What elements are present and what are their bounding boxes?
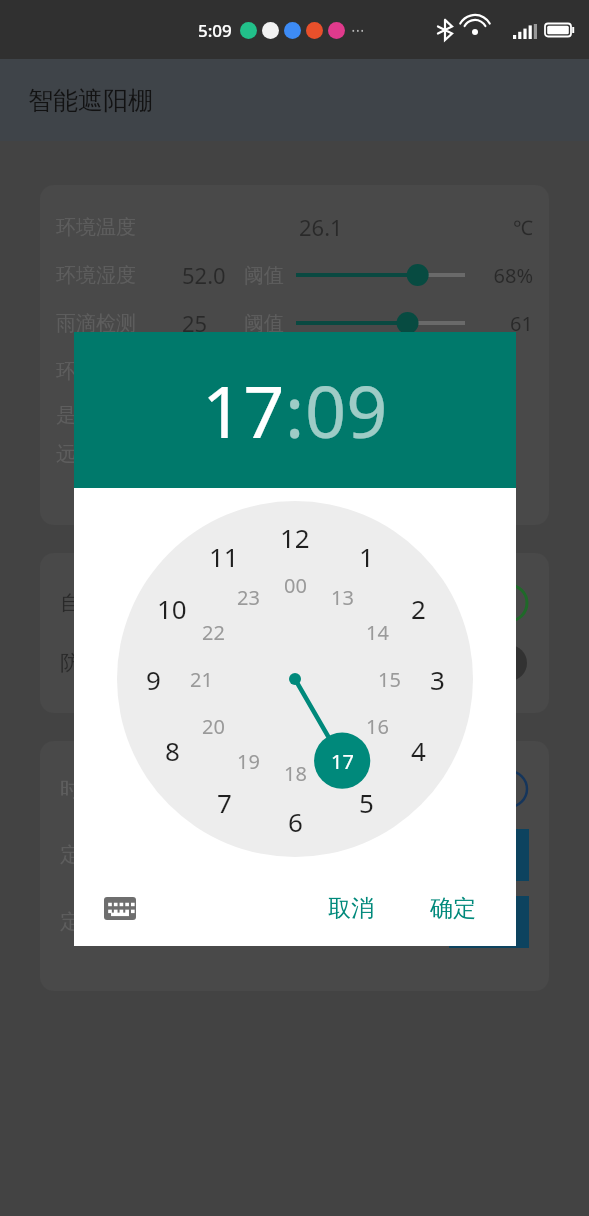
staticText: 环境温度 xyxy=(56,215,168,240)
button[interactable]: 23 xyxy=(226,575,270,619)
staticText: 6 xyxy=(288,804,303,839)
button[interactable]: 5 xyxy=(344,780,388,824)
staticText: 26.1 xyxy=(299,212,343,242)
staticText: 7 xyxy=(217,785,232,820)
staticText: 时 xyxy=(60,776,81,802)
staticText: 自 xyxy=(60,590,81,616)
button[interactable]: 9 xyxy=(131,657,175,701)
button[interactable]: 11 xyxy=(202,534,246,578)
staticText: 14 xyxy=(366,619,389,646)
staticText: 阈值 xyxy=(244,263,284,288)
staticText: 环境光照 xyxy=(56,359,168,384)
staticText: 2 xyxy=(411,591,426,626)
button[interactable]: 1 xyxy=(344,534,388,578)
staticText: ⋯ xyxy=(351,22,365,38)
staticText: 68% xyxy=(475,262,533,289)
button[interactable]: 6 xyxy=(273,799,317,843)
button[interactable]: 15 xyxy=(367,657,411,701)
staticText: : xyxy=(285,361,305,459)
button[interactable]: 2 xyxy=(396,586,440,630)
button[interactable]: 18 xyxy=(273,751,317,795)
staticText: 5 xyxy=(359,785,374,820)
staticText: 是 xyxy=(56,403,76,428)
button[interactable]: Switch to keyboard input xyxy=(98,886,142,930)
button[interactable]: 13 xyxy=(320,575,364,619)
staticText: 阈值 xyxy=(244,311,284,336)
staticText: 确定 xyxy=(430,894,476,923)
button[interactable]: 17 xyxy=(320,739,364,783)
staticText: 13 xyxy=(331,584,354,611)
staticText: 取消 xyxy=(328,894,374,923)
staticText: 4 xyxy=(411,733,426,768)
staticText: 防 xyxy=(60,650,81,676)
staticText: 25 xyxy=(182,308,244,338)
staticText: 10 xyxy=(157,591,187,626)
button[interactable]: 09 xyxy=(305,361,388,459)
staticText: 雨滴检测 xyxy=(56,311,168,336)
button[interactable]: 取消 xyxy=(312,884,390,933)
staticText: 61 xyxy=(475,310,533,337)
staticText: 8 xyxy=(165,733,180,768)
staticText: 1 xyxy=(359,539,374,574)
staticText: 15 xyxy=(378,666,401,693)
staticText: 智能遮阳棚 xyxy=(28,85,153,116)
button[interactable]: 3 xyxy=(415,657,459,701)
staticText: 12 xyxy=(280,520,310,555)
staticText: 5:09 xyxy=(198,19,232,42)
button[interactable]: 14 xyxy=(355,610,399,654)
button[interactable]: 16 xyxy=(355,704,399,748)
button[interactable]: 8 xyxy=(150,728,194,772)
staticText: 18 xyxy=(284,760,307,787)
staticText: 20 xyxy=(202,713,225,740)
staticText: 22 xyxy=(202,619,225,646)
staticText: 9 xyxy=(146,662,161,697)
button[interactable]: 12 xyxy=(273,515,317,559)
staticText: 3 xyxy=(430,662,445,697)
button[interactable]: 4 xyxy=(396,728,440,772)
button[interactable]: 22 xyxy=(191,610,235,654)
staticText: 11 xyxy=(209,539,239,574)
button[interactable]: 20 xyxy=(191,704,235,748)
button[interactable] xyxy=(447,829,529,881)
button[interactable]: 确定 xyxy=(414,884,492,933)
staticText: 21 xyxy=(190,666,213,693)
staticText: 52.0 xyxy=(182,260,244,290)
staticText: 16 xyxy=(366,713,389,740)
button[interactable]: 00 xyxy=(273,563,317,607)
button[interactable]: 重置 xyxy=(449,896,529,948)
staticText: 19 xyxy=(237,748,260,775)
staticText: ℃ xyxy=(475,214,533,241)
staticText: 定 xyxy=(60,842,81,868)
staticText: 17 xyxy=(331,748,354,775)
button[interactable]: 17 xyxy=(202,361,285,459)
button[interactable]: 7 xyxy=(202,780,246,824)
button[interactable]: 19 xyxy=(226,739,270,783)
button[interactable]: 10 xyxy=(150,586,194,630)
staticText xyxy=(475,358,533,385)
staticText: 定时结束 xyxy=(60,909,144,935)
button[interactable]: 21 xyxy=(179,657,223,701)
staticText: 重置 xyxy=(468,909,510,935)
staticText: 远 xyxy=(56,442,76,467)
staticText: 00 xyxy=(284,572,307,599)
staticText: 环境湿度 xyxy=(56,263,168,288)
staticText: 23 xyxy=(237,584,260,611)
